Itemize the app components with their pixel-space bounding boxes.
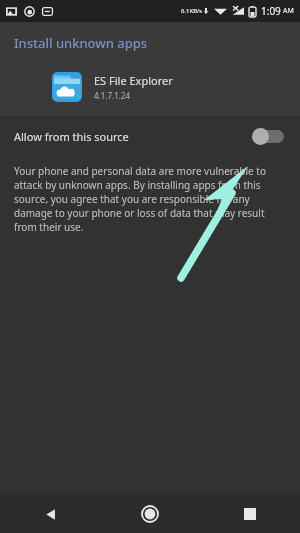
button[interactable]: Recent apps [233,497,267,531]
button[interactable]: Home [133,497,167,531]
staticText: AM [283,6,294,16]
staticText: ES File Explorer [94,73,173,88]
button[interactable]: Allow from this source [0,116,300,156]
staticText: Install unknown apps [14,34,148,52]
staticText: 1:09 [261,4,281,18]
staticText: Allow from this source [14,129,129,144]
staticText: 6.1KB/s [181,7,203,15]
staticText: Your phone and personal data are more vu… [14,164,288,234]
button[interactable]: Back [33,497,67,531]
staticText: 4.1.7.1.24 [94,90,131,101]
